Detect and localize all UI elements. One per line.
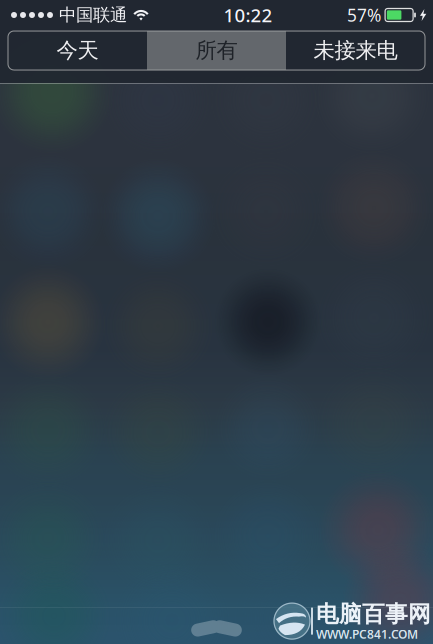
button[interactable]: 今天 bbox=[8, 31, 147, 70]
staticText: 今天 bbox=[56, 37, 98, 64]
staticText: 未接来电 bbox=[313, 37, 397, 64]
staticText: 电脑百事网 bbox=[316, 600, 431, 628]
button[interactable]: 未接来电 bbox=[286, 31, 425, 70]
button[interactable]: 所有 bbox=[147, 31, 286, 70]
staticText: 所有 bbox=[195, 37, 237, 64]
staticText: 中国联通 bbox=[59, 4, 127, 26]
staticText: 10:22 bbox=[223, 3, 272, 27]
staticText: WWW.PC841.COM bbox=[316, 626, 418, 642]
staticText: 57% bbox=[347, 3, 381, 26]
